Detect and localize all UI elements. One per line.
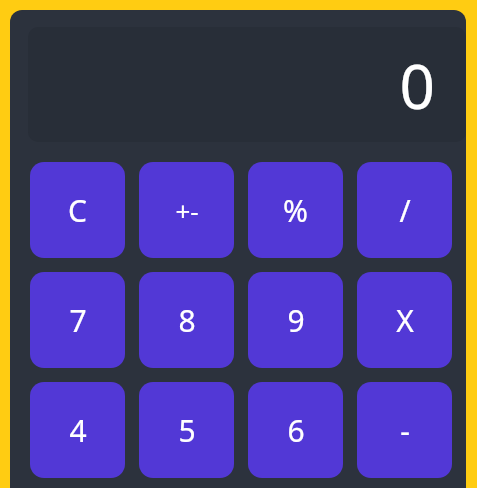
button[interactable]: 5	[139, 382, 234, 478]
staticText: +-	[175, 193, 199, 228]
staticText: 4	[69, 410, 87, 451]
staticText: 9	[287, 300, 305, 341]
button[interactable]: /	[357, 162, 452, 258]
button[interactable]: 8	[139, 272, 234, 368]
staticText: 5	[178, 410, 196, 451]
button[interactable]: C	[30, 162, 125, 258]
staticText: 7	[69, 300, 87, 341]
staticText: -	[400, 410, 410, 451]
staticText: 0	[399, 43, 435, 127]
button[interactable]: 6	[248, 382, 343, 478]
button[interactable]: 7	[30, 272, 125, 368]
staticText: 8	[178, 300, 196, 341]
button[interactable]: %	[248, 162, 343, 258]
button[interactable]: X	[357, 272, 452, 368]
button[interactable]: 9	[248, 272, 343, 368]
staticText: 6	[287, 410, 305, 451]
staticText: X	[396, 300, 414, 341]
staticText: %	[283, 190, 308, 231]
staticText: C	[68, 190, 87, 231]
button[interactable]: 4	[30, 382, 125, 478]
staticText: /	[399, 190, 411, 231]
button[interactable]: +-	[139, 162, 234, 258]
button[interactable]: -	[357, 382, 452, 478]
